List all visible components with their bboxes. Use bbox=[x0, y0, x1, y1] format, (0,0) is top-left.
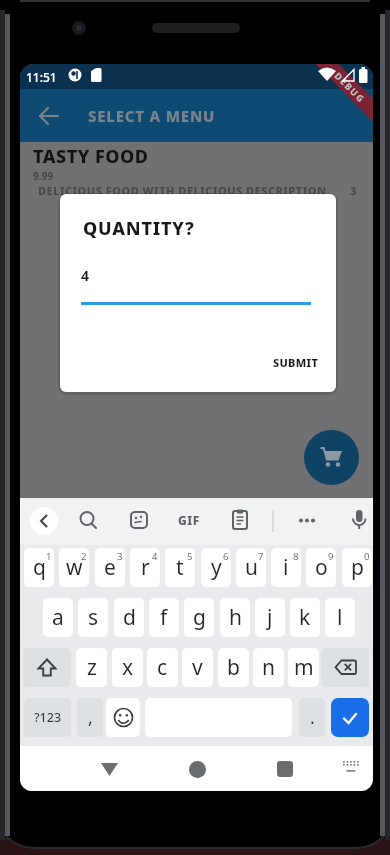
staticText: s bbox=[88, 603, 99, 632]
button[interactable] bbox=[225, 506, 255, 536]
staticText: ?123 bbox=[34, 709, 62, 726]
staticText: p bbox=[351, 553, 364, 582]
staticText: 0 bbox=[364, 550, 370, 563]
button[interactable] bbox=[36, 101, 66, 131]
button[interactable]: l bbox=[325, 598, 355, 637]
button[interactable]: i bbox=[271, 548, 301, 587]
button[interactable]: o bbox=[306, 548, 336, 587]
staticText: DELICIOUS FOOD WITH DELICIOUS DESCRIPTIO… bbox=[38, 183, 350, 198]
staticText: GIF bbox=[178, 512, 200, 528]
button[interactable] bbox=[270, 754, 300, 784]
staticText: 2 bbox=[81, 550, 87, 563]
staticText: f bbox=[160, 603, 168, 632]
staticText: 9.99 bbox=[33, 169, 54, 183]
staticText: n bbox=[262, 653, 275, 682]
button[interactable]: f bbox=[149, 598, 179, 637]
button[interactable]: k bbox=[290, 598, 320, 637]
button[interactable] bbox=[106, 698, 140, 737]
staticText: r bbox=[141, 553, 150, 582]
button[interactable] bbox=[344, 506, 373, 536]
staticText: 3 bbox=[117, 550, 123, 563]
staticText: u bbox=[245, 553, 258, 582]
staticText: d bbox=[123, 603, 136, 632]
staticText: b bbox=[227, 653, 240, 682]
button[interactable]: d bbox=[114, 598, 144, 637]
button[interactable]: ?123 bbox=[24, 698, 71, 737]
staticText: w bbox=[66, 553, 83, 582]
button[interactable]: n bbox=[253, 648, 284, 687]
staticText: 4 bbox=[81, 266, 90, 285]
button[interactable]: r bbox=[130, 548, 160, 587]
button[interactable] bbox=[124, 506, 154, 536]
staticText: 6 bbox=[223, 550, 229, 563]
button[interactable]: p bbox=[342, 548, 372, 587]
staticText: q bbox=[33, 553, 46, 582]
button[interactable]: y bbox=[201, 548, 231, 587]
staticText: x bbox=[122, 653, 134, 682]
button[interactable]: u bbox=[236, 548, 266, 587]
staticText: . bbox=[310, 705, 315, 730]
button[interactable] bbox=[304, 430, 359, 485]
button[interactable]: x bbox=[112, 648, 143, 687]
staticText: QUANTITY? bbox=[83, 216, 195, 241]
button[interactable] bbox=[175, 506, 205, 536]
button[interactable]: e bbox=[95, 548, 125, 587]
staticText: o bbox=[315, 553, 328, 582]
staticText: k bbox=[299, 603, 311, 632]
staticText: 8 bbox=[293, 550, 299, 563]
button[interactable] bbox=[321, 648, 369, 687]
button[interactable] bbox=[331, 698, 369, 737]
button[interactable]: TASTY FOOD bbox=[20, 142, 373, 198]
button[interactable]: , bbox=[77, 698, 103, 737]
button[interactable]: s bbox=[78, 598, 108, 637]
staticText: 5 bbox=[187, 550, 193, 563]
button[interactable] bbox=[23, 648, 71, 687]
staticText: y bbox=[211, 553, 222, 582]
button[interactable]: . bbox=[299, 698, 325, 737]
staticText: 3 bbox=[350, 183, 357, 198]
button[interactable] bbox=[94, 754, 124, 784]
staticText: l bbox=[337, 603, 343, 632]
staticText: i bbox=[283, 553, 289, 582]
button[interactable]: w bbox=[59, 548, 89, 587]
button[interactable] bbox=[72, 506, 102, 536]
staticText: z bbox=[87, 653, 97, 682]
staticText: 1 bbox=[46, 550, 52, 563]
staticText: c bbox=[157, 653, 168, 682]
button[interactable]: m bbox=[288, 648, 319, 687]
staticText: h bbox=[229, 603, 242, 632]
staticText: t bbox=[176, 553, 184, 582]
staticText: a bbox=[52, 603, 64, 632]
button[interactable]: c bbox=[147, 648, 178, 687]
button[interactable]: h bbox=[220, 598, 250, 637]
staticText: TASTY FOOD bbox=[33, 144, 149, 169]
staticText: DEBUG bbox=[332, 69, 368, 105]
button[interactable] bbox=[182, 754, 212, 784]
button[interactable] bbox=[292, 506, 322, 536]
staticText: v bbox=[192, 653, 203, 682]
staticText: 4 bbox=[152, 550, 158, 563]
staticText: SELECT A MENU bbox=[88, 106, 216, 126]
button[interactable]: SUBMIT bbox=[263, 345, 329, 380]
staticText: g bbox=[193, 603, 206, 632]
staticText: j bbox=[267, 603, 273, 632]
button[interactable]: v bbox=[182, 648, 213, 687]
button[interactable]: j bbox=[255, 598, 285, 637]
staticText: m bbox=[294, 653, 314, 682]
button[interactable]: t bbox=[165, 548, 195, 587]
staticText: , bbox=[88, 705, 93, 730]
staticText: 11:51 bbox=[26, 69, 57, 85]
staticText: SUBMIT bbox=[273, 355, 319, 370]
button[interactable] bbox=[29, 506, 59, 536]
button[interactable]: a bbox=[43, 598, 73, 637]
staticText: 7 bbox=[258, 550, 264, 563]
button[interactable]: b bbox=[218, 648, 249, 687]
staticText: e bbox=[104, 553, 116, 582]
button[interactable]: g bbox=[184, 598, 214, 637]
button[interactable]: z bbox=[76, 648, 107, 687]
staticText: 9 bbox=[328, 550, 334, 563]
button[interactable] bbox=[340, 756, 362, 778]
button[interactable]: q bbox=[24, 548, 54, 587]
